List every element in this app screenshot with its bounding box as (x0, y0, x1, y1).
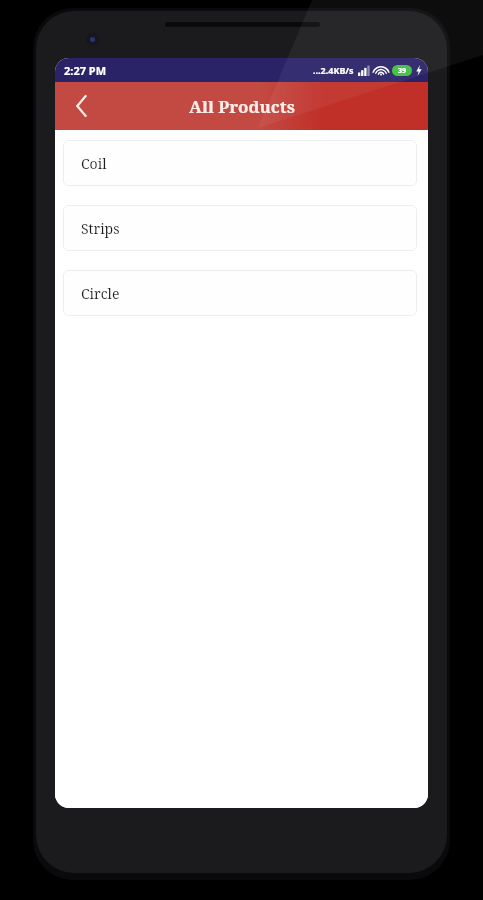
staticText: Circle (81, 284, 120, 303)
button[interactable]: Circle (63, 270, 417, 316)
button[interactable]: Strips (63, 205, 417, 251)
staticText: 39 (398, 66, 407, 76)
staticText: Coil (81, 154, 107, 173)
button[interactable]: Coil (63, 140, 417, 186)
staticText: Strips (81, 219, 120, 238)
staticText: 2:27 PM (64, 63, 107, 78)
staticText: ...2.4KB/s (313, 64, 354, 76)
staticText: All Products (189, 95, 295, 118)
button[interactable]: Back (61, 86, 101, 126)
